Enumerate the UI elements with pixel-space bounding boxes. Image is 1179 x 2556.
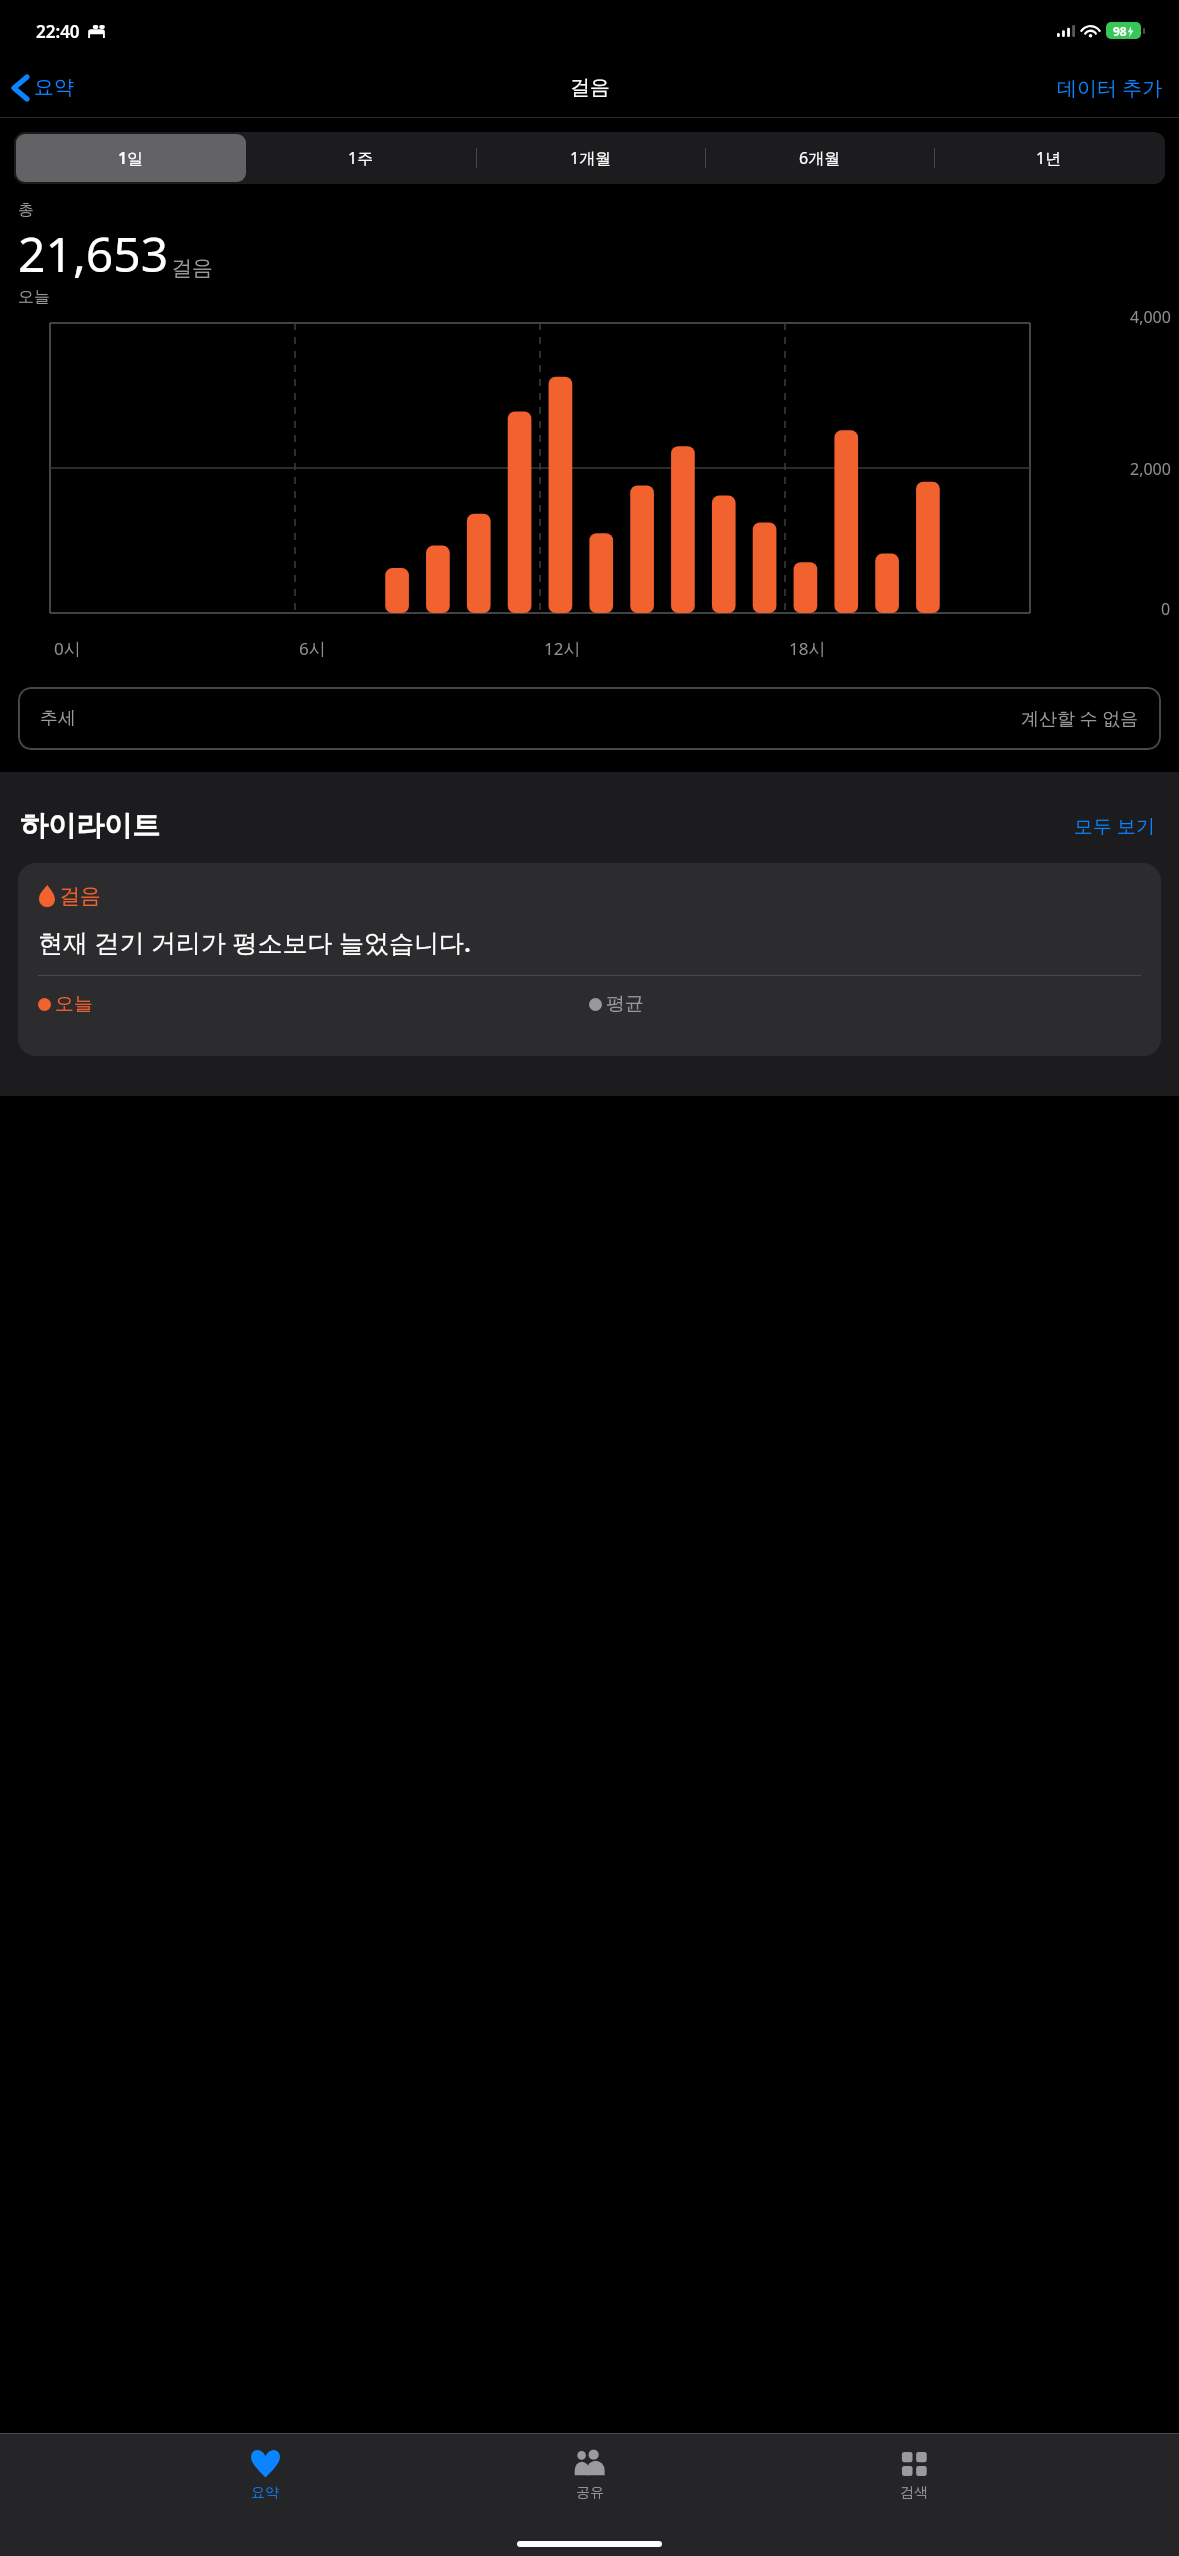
button[interactable]: 검색 bbox=[854, 2444, 974, 2506]
staticText: 21,653 bbox=[18, 221, 169, 286]
button[interactable]: 1일 bbox=[16, 134, 246, 182]
staticText: 6시 bbox=[299, 637, 326, 660]
staticText: 오늘 bbox=[55, 992, 93, 1016]
staticText: 현재 걷기 거리가 평소보다 늘었습니다. bbox=[38, 925, 471, 959]
staticText: 검색 bbox=[900, 2484, 928, 2502]
button[interactable]: 공유 bbox=[530, 2444, 650, 2506]
button[interactable]: 1주 bbox=[246, 134, 476, 182]
staticText: 0 bbox=[1161, 598, 1171, 620]
staticText: 1개월 bbox=[570, 147, 612, 169]
staticText: 2,000 bbox=[1130, 458, 1171, 480]
staticText: 공유 bbox=[576, 2484, 604, 2502]
staticText: 요약 bbox=[251, 2484, 279, 2502]
staticText: 22:40 bbox=[36, 20, 80, 43]
staticText: 걸음 bbox=[570, 75, 610, 100]
button[interactable]: 1개월 bbox=[476, 134, 705, 182]
button[interactable]: 추세 bbox=[18, 687, 1161, 750]
staticText: 0시 bbox=[54, 637, 81, 660]
staticText: 걸음 bbox=[59, 883, 101, 909]
staticText: 하이라이트 bbox=[20, 808, 160, 843]
staticText: 1주 bbox=[348, 147, 374, 169]
staticText: 평균 bbox=[606, 992, 644, 1016]
staticText: 오늘 bbox=[18, 287, 50, 307]
staticText: 1년 bbox=[1036, 147, 1062, 169]
staticText: 요약 bbox=[34, 75, 74, 100]
staticText: 6개월 bbox=[799, 147, 841, 169]
staticText: 18시 bbox=[789, 637, 826, 660]
staticText: 총 bbox=[18, 200, 34, 220]
staticText: 4,000 bbox=[1130, 306, 1171, 328]
button[interactable]: 걸음 bbox=[18, 863, 1161, 1056]
staticText: 걸음 bbox=[171, 255, 213, 281]
button[interactable]: 1년 bbox=[934, 134, 1163, 182]
button[interactable]: 요약 bbox=[205, 2444, 325, 2506]
staticText: 추세 bbox=[40, 707, 76, 730]
button[interactable]: 6개월 bbox=[705, 134, 934, 182]
staticText: 12시 bbox=[544, 637, 581, 660]
staticText: 계산할 수 없음 bbox=[1021, 706, 1139, 731]
button[interactable]: 데이터 추가 bbox=[1041, 66, 1179, 109]
button[interactable]: 모두 보기 bbox=[1070, 809, 1159, 843]
staticText: 98 bbox=[1113, 23, 1127, 39]
button[interactable]: 요약 bbox=[0, 69, 84, 106]
staticText: 1일 bbox=[118, 147, 144, 169]
